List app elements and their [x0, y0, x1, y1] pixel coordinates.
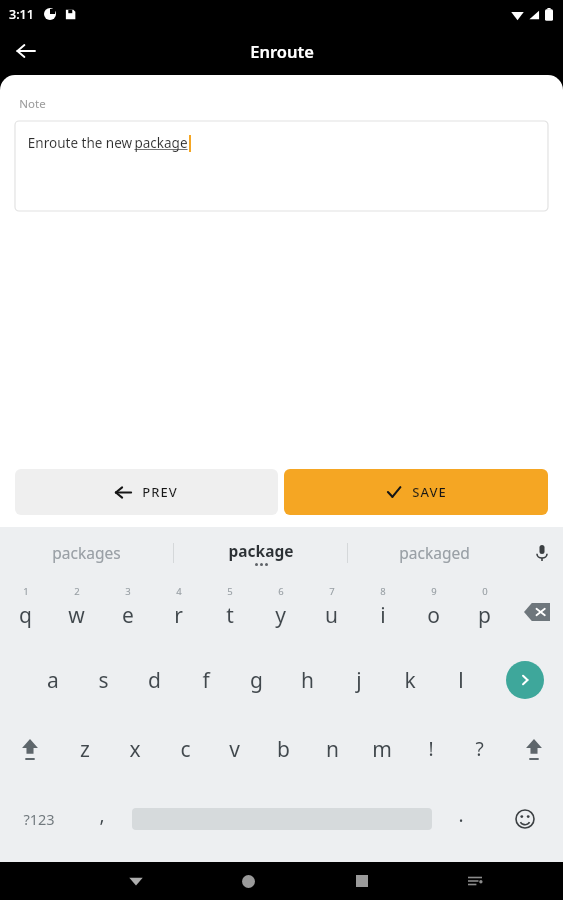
button[interactable]: 6 — [255, 578, 306, 646]
button[interactable]: 7 — [306, 578, 357, 646]
button[interactable]: 3 — [102, 578, 153, 646]
staticText: 5 — [227, 585, 233, 598]
staticText: 2 — [74, 585, 80, 598]
staticText: ! — [428, 736, 434, 762]
button[interactable]: 2 — [51, 578, 102, 646]
staticText: 1 — [23, 585, 29, 598]
staticText: o — [427, 601, 440, 630]
button[interactable]: l — [435, 646, 486, 714]
button[interactable]: Space — [127, 784, 436, 854]
staticText: f — [202, 666, 210, 695]
staticText: y — [275, 601, 286, 630]
button[interactable]: Shift — [0, 714, 60, 784]
staticText: Enroute — [250, 40, 314, 62]
staticText: Note — [19, 96, 46, 112]
staticText: h — [301, 666, 314, 695]
staticText: b — [277, 735, 290, 764]
button[interactable]: v — [210, 714, 259, 784]
staticText: w — [68, 601, 85, 630]
staticText: c — [180, 735, 191, 764]
button[interactable]: Voice input — [521, 527, 563, 578]
button[interactable]: 5 — [204, 578, 255, 646]
button[interactable]: Hide keyboard — [79, 862, 192, 900]
staticText: u — [325, 601, 338, 630]
button[interactable]: b — [259, 714, 308, 784]
button[interactable]: x — [110, 714, 160, 784]
button[interactable]: Back — [7, 32, 45, 70]
staticText: 6 — [278, 585, 284, 598]
staticText: j — [356, 666, 362, 695]
staticText: d — [148, 666, 161, 695]
staticText: p — [478, 601, 491, 630]
button[interactable]: j — [333, 646, 384, 714]
staticText: Enroute the new — [26, 134, 134, 152]
staticText: package — [134, 134, 188, 152]
button[interactable]: f — [180, 646, 231, 714]
staticText: g — [250, 666, 263, 695]
staticText: 4 — [176, 585, 182, 598]
staticText: ? — [475, 736, 484, 762]
button[interactable]: a — [27, 646, 78, 714]
button[interactable]: PREV — [15, 469, 278, 515]
staticText: 8 — [380, 585, 386, 598]
staticText: k — [404, 666, 416, 695]
button[interactable]: Enroute the new — [15, 121, 548, 211]
button[interactable]: m — [357, 714, 406, 784]
staticText: packaged — [399, 542, 470, 563]
button[interactable]: s — [78, 646, 129, 714]
button[interactable]: c — [160, 714, 210, 784]
button[interactable]: d — [129, 646, 180, 714]
button[interactable]: Switch keyboard — [418, 862, 531, 900]
button[interactable]: Home — [192, 862, 305, 900]
staticText: v — [229, 735, 240, 764]
button[interactable]: 9 — [408, 578, 459, 646]
staticText: e — [122, 601, 134, 630]
staticText: package — [228, 540, 294, 561]
staticText: l — [458, 666, 464, 695]
button[interactable]: package — [174, 527, 347, 578]
staticText: SAVE — [412, 483, 447, 501]
button[interactable]: ! — [406, 714, 455, 784]
staticText: n — [326, 735, 339, 764]
button[interactable]: 4 — [153, 578, 204, 646]
button[interactable]: packages — [0, 527, 173, 578]
staticText: packages — [52, 542, 121, 563]
staticText: 9 — [431, 585, 437, 598]
staticText: x — [129, 735, 141, 764]
button[interactable]: 8 — [357, 578, 408, 646]
staticText: z — [80, 735, 90, 764]
button[interactable]: Enter — [486, 646, 563, 714]
button[interactable]: 1 — [0, 578, 51, 646]
button[interactable]: z — [60, 714, 110, 784]
button[interactable]: Backspace — [510, 578, 563, 646]
staticText: m — [372, 735, 392, 764]
staticText: 3 — [125, 585, 131, 598]
staticText: ?123 — [23, 809, 55, 829]
staticText: i — [380, 601, 386, 630]
staticText: s — [98, 666, 109, 695]
button[interactable]: g — [231, 646, 282, 714]
button[interactable]: ? — [455, 714, 504, 784]
staticText: t — [226, 601, 234, 630]
staticText: 3:11 — [9, 6, 34, 23]
staticText: PREV — [142, 483, 178, 501]
button[interactable]: h — [282, 646, 333, 714]
staticText: q — [19, 601, 32, 630]
staticText: 0 — [482, 585, 488, 598]
button[interactable]: , — [77, 784, 127, 854]
button[interactable]: packaged — [348, 527, 521, 578]
button[interactable]: SAVE — [284, 469, 548, 515]
staticText: a — [47, 666, 59, 695]
staticText: 7 — [329, 585, 335, 598]
button[interactable]: Recents — [305, 862, 418, 900]
button[interactable]: . — [436, 784, 486, 854]
staticText: r — [174, 601, 183, 630]
staticText: , — [99, 802, 105, 828]
staticText: . — [458, 802, 464, 828]
button[interactable]: ?123 — [0, 784, 77, 854]
button[interactable]: 0 — [459, 578, 510, 646]
button[interactable]: Emoji — [486, 784, 563, 854]
button[interactable]: Shift — [504, 714, 563, 784]
button[interactable]: k — [384, 646, 435, 714]
button[interactable]: n — [308, 714, 357, 784]
